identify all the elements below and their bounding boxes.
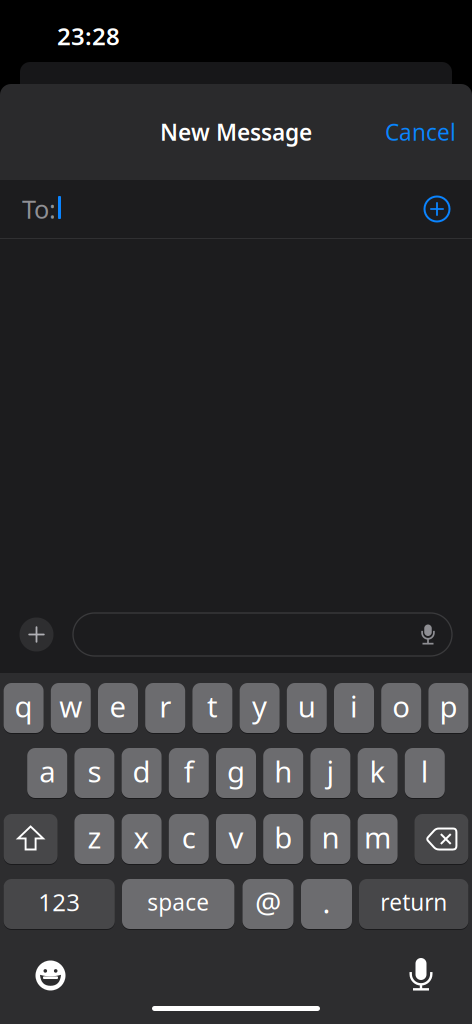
staticText: z [87, 817, 101, 856]
staticText: 23:28 [57, 20, 120, 52]
staticText: p [439, 686, 457, 725]
button[interactable]: l [405, 748, 445, 798]
staticText: m [364, 817, 391, 856]
button[interactable]: Message field, dictate [73, 613, 452, 656]
button[interactable]: p [428, 683, 468, 733]
staticText: x [134, 817, 150, 856]
staticText: y [252, 686, 267, 725]
button[interactable]: d [122, 748, 162, 798]
button[interactable]: Attach [19, 617, 53, 651]
staticText: Cancel [385, 117, 456, 147]
staticText: 123 [38, 886, 80, 918]
button[interactable]: v [216, 814, 256, 864]
button[interactable]: e [98, 683, 138, 733]
button[interactable]: a [27, 748, 67, 798]
staticText: e [109, 686, 126, 725]
staticText: n [321, 817, 339, 856]
button[interactable]: . [301, 879, 352, 929]
staticText: d [133, 751, 151, 790]
button[interactable]: Emoji [35, 960, 66, 991]
button[interactable]: c [169, 814, 209, 864]
button[interactable]: i [334, 683, 374, 733]
staticText: l [421, 751, 429, 790]
button[interactable]: o [381, 683, 421, 733]
staticText: j [326, 751, 334, 790]
button[interactable]: s [74, 748, 114, 798]
button[interactable]: w [51, 683, 91, 733]
button[interactable]: return [359, 879, 468, 929]
button[interactable]: j [310, 748, 350, 798]
button[interactable]: m [358, 814, 398, 864]
staticText: space [147, 887, 209, 917]
staticText: @ [255, 882, 281, 921]
staticText: a [39, 751, 55, 790]
button[interactable]: n [310, 814, 350, 864]
staticText: w [59, 686, 82, 725]
button[interactable]: h [263, 748, 303, 798]
staticText: s [87, 751, 101, 790]
staticText: b [274, 817, 292, 856]
button[interactable]: b [263, 814, 303, 864]
staticText: k [370, 751, 386, 790]
staticText: f [184, 751, 194, 790]
button[interactable]: q [4, 683, 44, 733]
staticText: v [228, 817, 243, 856]
button[interactable]: g [216, 748, 256, 798]
button[interactable]: Delete [414, 814, 468, 864]
staticText: . [322, 882, 330, 921]
staticText: t [207, 686, 218, 725]
button[interactable]: Cancel [385, 117, 456, 147]
button[interactable]: @ [242, 879, 293, 929]
button[interactable]: t [192, 683, 232, 733]
staticText: c [182, 817, 196, 856]
staticText: o [392, 686, 410, 725]
staticText: return [380, 887, 447, 917]
staticText: g [227, 751, 245, 790]
staticText: New Message [160, 117, 312, 147]
staticText: q [15, 686, 33, 725]
button[interactable]: Shift [4, 814, 58, 864]
button[interactable]: k [358, 748, 398, 798]
button[interactable]: 123 [4, 879, 115, 929]
button[interactable]: To [0, 180, 472, 238]
button[interactable]: Add Contact [424, 196, 449, 221]
button[interactable]: Dictation [409, 958, 433, 990]
staticText: r [159, 686, 171, 725]
button[interactable]: u [287, 683, 327, 733]
staticText: i [350, 686, 358, 725]
staticText: To: [22, 192, 56, 226]
button[interactable]: space [122, 879, 234, 929]
staticText: u [298, 686, 316, 725]
button[interactable]: y [240, 683, 280, 733]
staticText: h [274, 751, 292, 790]
button[interactable]: f [169, 748, 209, 798]
button[interactable]: z [74, 814, 114, 864]
button[interactable]: r [145, 683, 185, 733]
button[interactable]: x [122, 814, 162, 864]
